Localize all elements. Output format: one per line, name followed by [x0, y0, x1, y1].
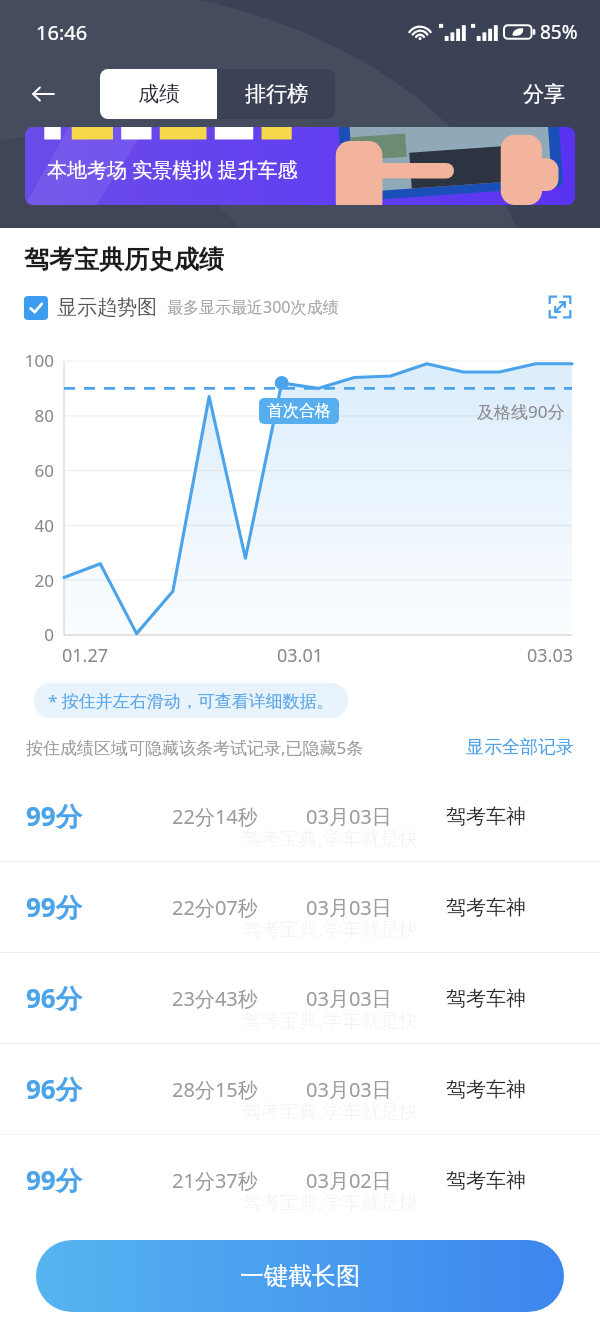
- staticText: 03月03日: [306, 803, 392, 830]
- button[interactable]: 一键截长图: [36, 1240, 564, 1312]
- staticText: 0: [0, 623, 54, 646]
- staticText: 23分43秒: [172, 985, 258, 1012]
- staticText: 驾考宝典,学车就是快: [242, 1098, 419, 1124]
- staticText: 20: [0, 569, 54, 592]
- staticText: 显示趋势图: [57, 295, 157, 320]
- button[interactable]: Back: [0, 68, 86, 120]
- staticText: 分享: [523, 81, 565, 107]
- staticText: 22分14秒: [172, 803, 258, 830]
- staticText: 03.01: [277, 643, 324, 668]
- staticText: 驾考宝典,学车就是快: [242, 1007, 419, 1033]
- staticText: 100: [0, 349, 54, 372]
- staticText: * 按住并左右滑动，可查看详细数据。: [48, 689, 334, 712]
- staticText: 40: [0, 514, 54, 537]
- staticText: 驾考宝典历史成绩: [24, 244, 224, 275]
- button[interactable]: 本地考场 实景模拟 提升车感: [25, 127, 575, 205]
- button[interactable]: 排行榜: [217, 69, 335, 119]
- staticText: 驾考车神: [446, 895, 526, 920]
- staticText: 驾考车神: [446, 1077, 526, 1102]
- staticText: 99分: [26, 1162, 82, 1198]
- staticText: 显示全部记录: [466, 736, 574, 759]
- button[interactable]: 分享: [488, 68, 600, 120]
- button[interactable]: 驾考宝典,学车就是快: [0, 1044, 600, 1134]
- button[interactable]: Fullscreen: [542, 289, 578, 325]
- staticText: 本地考场 实景模拟 提升车感: [47, 156, 298, 183]
- staticText: 03.03: [527, 643, 574, 668]
- button[interactable]: 显示全部记录: [466, 736, 574, 759]
- staticText: 驾考宝典,学车就是快: [242, 825, 419, 851]
- staticText: 80: [0, 404, 54, 427]
- staticText: 60: [0, 459, 54, 482]
- button[interactable]: 驾考宝典,学车就是快: [0, 1135, 600, 1225]
- staticText: 成绩: [138, 81, 180, 107]
- staticText: 及格线90分: [477, 400, 565, 423]
- staticText: 驾考车神: [446, 804, 526, 829]
- button[interactable]: 驾考宝典,学车就是快: [0, 771, 600, 861]
- staticText: 排行榜: [245, 81, 308, 107]
- staticText: 03月03日: [306, 1076, 392, 1103]
- staticText: 驾考车神: [446, 1168, 526, 1193]
- staticText: 99分: [26, 889, 82, 925]
- staticText: 按住成绩区域可隐藏该条考试记录,已隐藏5条: [26, 736, 364, 759]
- staticText: 16:46: [36, 19, 88, 46]
- staticText: 96分: [26, 1071, 82, 1107]
- staticText: 03月03日: [306, 985, 392, 1012]
- staticText: 一键截长图: [240, 1261, 360, 1291]
- staticText: 85%: [540, 19, 578, 45]
- staticText: 03月03日: [306, 894, 392, 921]
- staticText: 99分: [26, 798, 82, 834]
- staticText: 驾考宝典,学车就是快: [242, 1189, 419, 1215]
- staticText: 28分15秒: [172, 1076, 258, 1103]
- staticText: 22分07秒: [172, 894, 258, 921]
- staticText: 01.27: [62, 643, 109, 668]
- staticText: 首次合格: [267, 401, 331, 421]
- staticText: 96分: [26, 980, 82, 1016]
- button[interactable]: * 按住并左右滑动，可查看详细数据。: [34, 683, 348, 718]
- staticText: 03月02日: [306, 1167, 392, 1194]
- staticText: 驾考车神: [446, 986, 526, 1011]
- staticText: 21分37秒: [172, 1167, 258, 1194]
- button[interactable]: 成绩: [100, 69, 217, 119]
- staticText: 驾考宝典,学车就是快: [242, 916, 419, 942]
- button[interactable]: 显示趋势图: [24, 295, 157, 320]
- staticText: 最多显示最近300次成绩: [167, 296, 339, 318]
- button[interactable]: 驾考宝典,学车就是快: [0, 862, 600, 952]
- button[interactable]: 驾考宝典,学车就是快: [0, 953, 600, 1043]
